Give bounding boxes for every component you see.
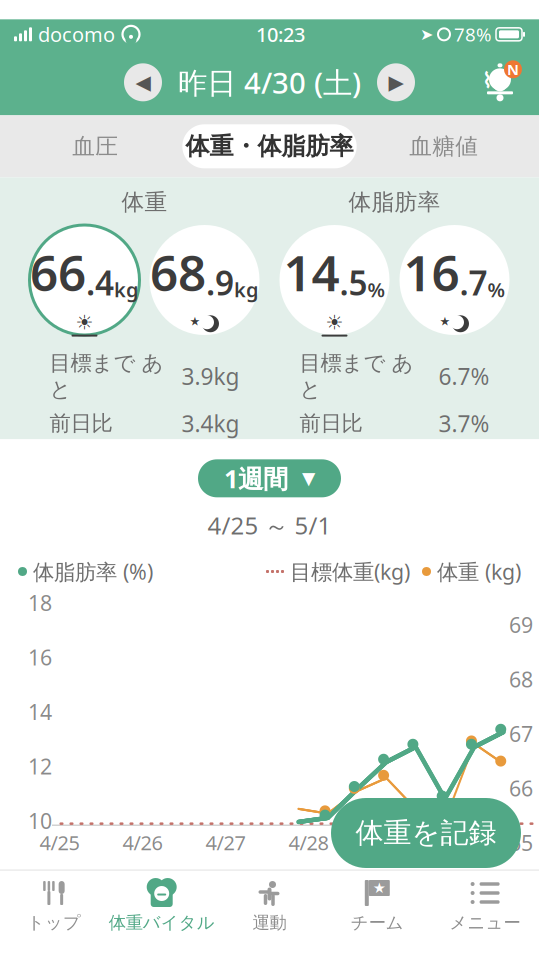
staticText: ▶ <box>388 71 403 94</box>
staticText: docomo <box>38 21 115 48</box>
staticText: ▼ <box>302 468 315 488</box>
staticText: 4/26 <box>122 829 162 856</box>
staticText: 3.7% <box>438 408 489 438</box>
staticText: ➤ <box>420 25 433 43</box>
staticText: 4/25 ～ 5/1 <box>207 509 331 541</box>
staticText: 78% <box>454 22 492 47</box>
staticText: 65 <box>509 828 533 857</box>
staticText: 3.9kg <box>181 361 239 391</box>
staticText: kg <box>114 276 139 303</box>
staticText: N <box>507 60 519 79</box>
staticText: kg <box>234 276 259 303</box>
staticText: 目標体重(kg) <box>290 557 410 586</box>
staticText: 前日比 <box>299 410 362 437</box>
staticText: 4/28 <box>288 829 328 856</box>
staticText: 68 <box>509 665 533 693</box>
staticText: 昨日 4/30 (土) <box>178 63 361 102</box>
staticText: ★ <box>189 314 200 328</box>
staticText: 14 <box>28 697 52 726</box>
staticText: 4/29 <box>371 829 411 856</box>
button[interactable]: 体重を記録 <box>331 798 521 868</box>
button[interactable]: 血糖値 <box>357 124 531 168</box>
staticText: 体脂肪率 <box>348 188 440 216</box>
button[interactable]: 血圧 <box>8 124 182 168</box>
button[interactable]: 次の日 <box>377 63 415 101</box>
staticText: 目標まで あと <box>49 350 163 402</box>
staticText: 目標まで あと <box>299 350 413 402</box>
button[interactable]: 体重バイタル <box>108 871 216 941</box>
staticText: 16 <box>403 239 459 305</box>
staticText: 4/27 <box>205 829 245 856</box>
staticText: ◀ <box>135 71 150 94</box>
staticText: チーム <box>351 912 404 933</box>
staticText: .7 <box>459 260 487 305</box>
button[interactable]: ★ <box>323 871 431 941</box>
staticText: 67 <box>509 719 533 748</box>
staticText: ⌇ <box>482 68 492 92</box>
staticText: ☀ <box>75 311 93 334</box>
button[interactable]: お知らせ <box>473 59 527 105</box>
button[interactable]: 運動 <box>216 871 323 941</box>
button[interactable]: 前の日 <box>124 63 162 101</box>
staticText: 体重・体脂肪率 <box>185 132 353 161</box>
staticText: .9 <box>206 260 234 305</box>
staticText: 66 <box>509 774 533 802</box>
staticText: 体脂肪率 (%) <box>33 557 153 586</box>
staticText: 12 <box>28 752 52 780</box>
staticText: 16 <box>28 643 52 671</box>
button[interactable]: 1週間 <box>198 459 341 497</box>
staticText: 1週間 <box>224 461 288 495</box>
staticText: 3.4kg <box>181 408 239 438</box>
staticText: 18 <box>28 588 52 617</box>
button[interactable]: 体重・体脂肪率 <box>182 124 357 168</box>
staticText: トップ <box>27 912 81 933</box>
staticText: ★ <box>373 880 386 896</box>
staticText: 血圧 <box>72 132 118 160</box>
staticText: 10:23 <box>256 21 305 48</box>
staticText: 体重 <box>121 188 167 216</box>
staticText: 6.7% <box>438 361 489 391</box>
staticText: 10 <box>28 806 52 835</box>
staticText: 69 <box>509 610 533 639</box>
button[interactable]: トップ <box>0 871 108 941</box>
staticText: 4/25 <box>39 829 79 856</box>
staticText: メニュー <box>450 912 521 933</box>
staticText: 体重 (kg) <box>437 557 521 586</box>
staticText: 66 <box>30 239 86 305</box>
staticText: .4 <box>86 260 114 305</box>
staticText: % <box>487 276 505 303</box>
staticText: 体重を記録 <box>355 816 496 850</box>
staticText: .5 <box>339 260 367 305</box>
staticText: ★ <box>439 314 450 328</box>
staticText: 14 <box>283 239 339 305</box>
button[interactable]: メニュー <box>431 871 539 941</box>
staticText: 前日比 <box>49 410 112 437</box>
staticText: 体重バイタル <box>109 912 215 933</box>
staticText: 血糖値 <box>409 132 478 160</box>
staticText: % <box>367 276 385 303</box>
staticText: ☀ <box>325 311 343 334</box>
staticText: 68 <box>150 239 206 305</box>
staticText: 運動 <box>252 912 286 933</box>
